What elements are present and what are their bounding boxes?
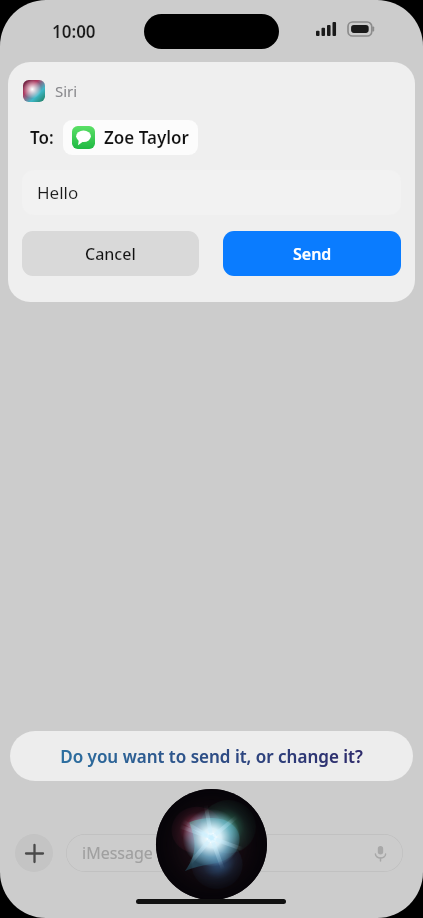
staticText: To: (30, 126, 54, 149)
button[interactable]: Hello (22, 170, 401, 215)
button[interactable]: Zoe Taylor (63, 120, 198, 155)
button[interactable]: iMessage (66, 834, 403, 872)
staticText: Send (293, 243, 332, 265)
button[interactable]: Cancel (22, 231, 199, 276)
other: Siri (156, 789, 267, 900)
staticText: Zoe Taylor (104, 126, 189, 149)
staticText: 10:00 (52, 20, 96, 43)
staticText: Hello (37, 181, 79, 204)
staticText: Cancel (85, 243, 136, 265)
button[interactable]: Send (223, 231, 401, 276)
staticText: iMessage (82, 842, 153, 864)
button[interactable]: Dictate (367, 840, 393, 866)
staticText: Do you want to send it, or change it? (60, 745, 363, 768)
button[interactable]: Do you want to send it, or change it? (10, 731, 413, 781)
staticText: Siri (55, 81, 78, 101)
button[interactable]: Add attachment (15, 834, 53, 872)
